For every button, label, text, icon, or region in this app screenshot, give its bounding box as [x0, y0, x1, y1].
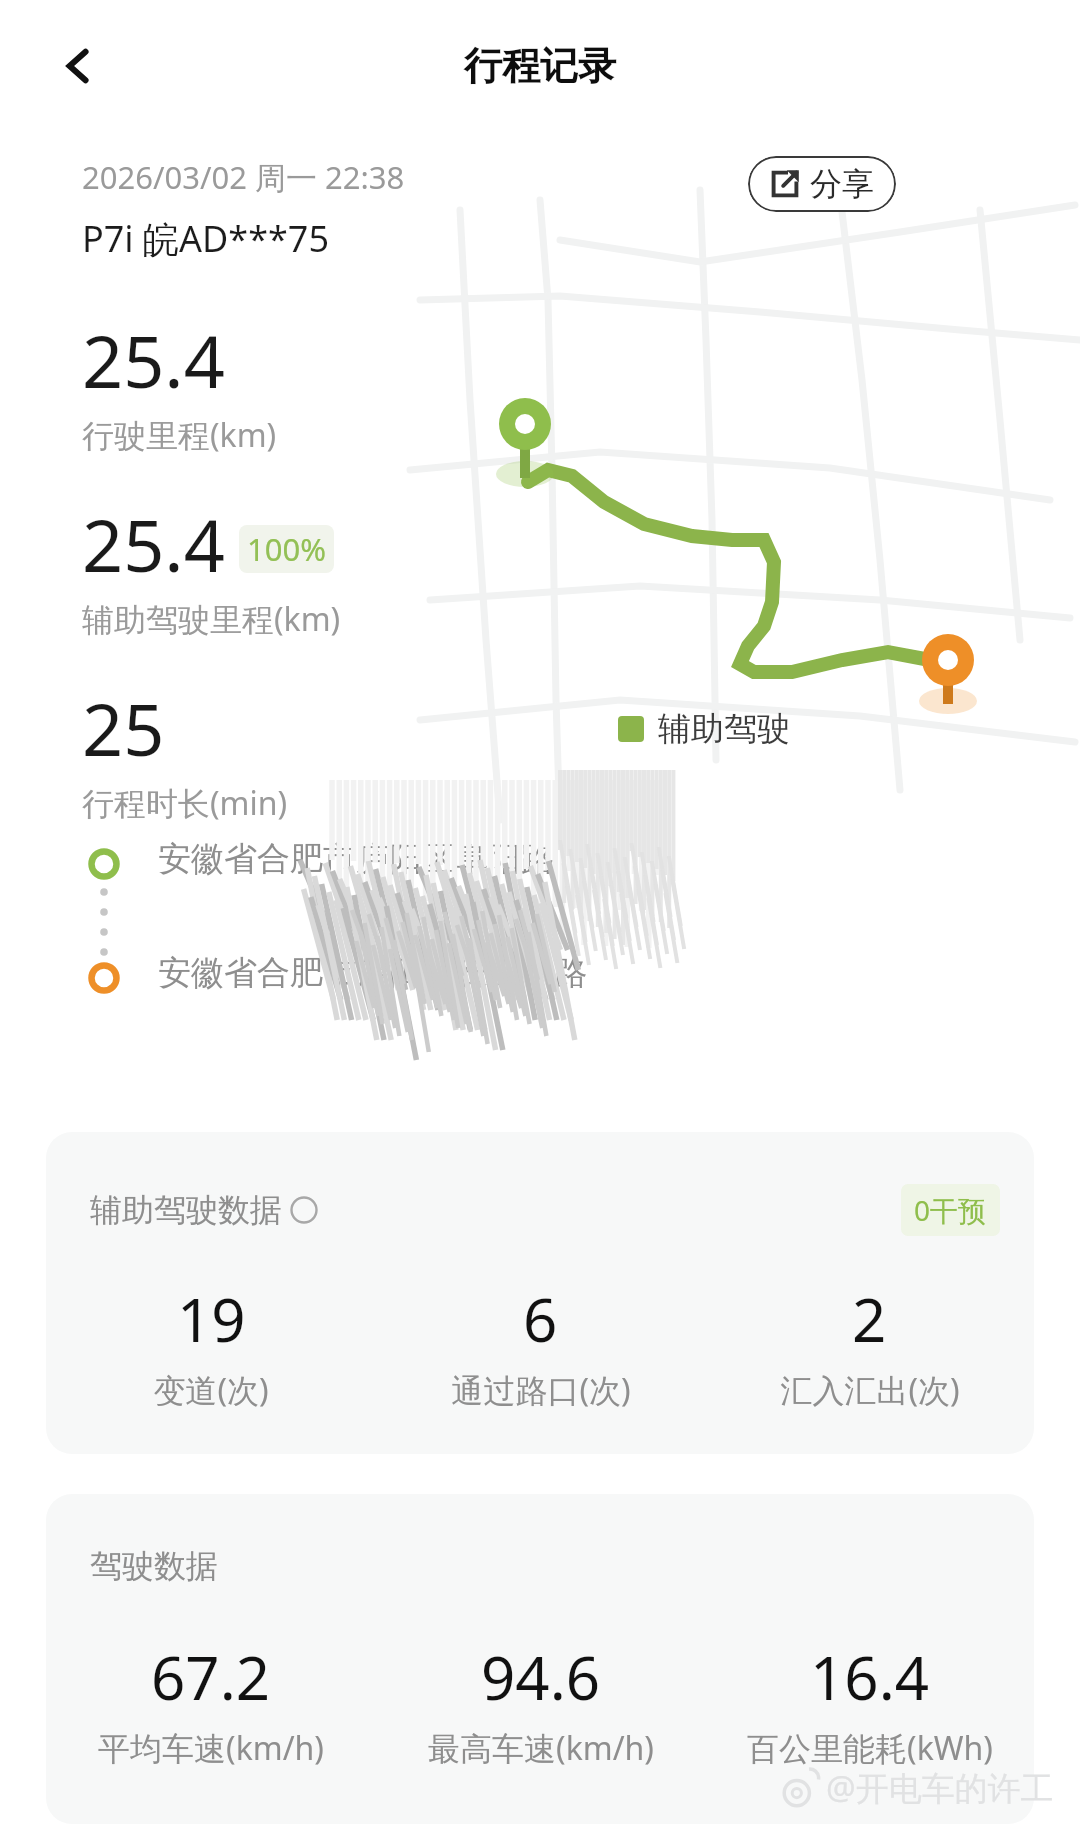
staticText: 19	[177, 1278, 246, 1360]
staticText: 25.4	[82, 495, 225, 593]
staticText: 百公里能耗(kWh)	[747, 1726, 993, 1770]
staticText: 变道(次)	[153, 1368, 269, 1412]
staticText: 辅助驾驶数据	[90, 1190, 282, 1230]
staticText: 分享	[810, 164, 874, 204]
button[interactable]: 2	[705, 1278, 1034, 1412]
staticText: 安徽省合肥市庐阳区长江中路	[158, 952, 587, 994]
staticText: 辅助驾驶	[658, 708, 790, 750]
staticText: 平均车速(km/h)	[98, 1726, 324, 1770]
staticText: 行驶里程(km)	[82, 413, 277, 457]
staticText: 行程时长(min)	[82, 781, 288, 825]
staticText: 0干预	[914, 1191, 987, 1229]
button[interactable]: 16.4	[705, 1636, 1034, 1770]
staticText: 驾驶数据	[90, 1546, 218, 1586]
staticText: 最高车速(km/h)	[428, 1726, 654, 1770]
button[interactable]: 分享	[748, 156, 896, 212]
staticText: P7i 皖AD***75	[82, 214, 329, 263]
staticText: 67.2	[151, 1636, 271, 1718]
staticText: 16.4	[810, 1636, 930, 1718]
staticText: 汇入汇出(次)	[780, 1368, 960, 1412]
staticText: 6	[523, 1278, 558, 1360]
button[interactable]: Help	[290, 1196, 318, 1224]
staticText: 100%	[247, 528, 326, 570]
staticText: 辅助驾驶里程(km)	[82, 597, 341, 641]
button[interactable]: 19	[46, 1278, 376, 1412]
button[interactable]: Back	[38, 26, 118, 106]
staticText: 通过路口(次)	[451, 1368, 631, 1412]
staticText: 安徽省合肥市庐阳区阜阳路	[158, 838, 554, 880]
staticText: 行程记录	[464, 42, 616, 90]
staticText: @开电车的许工	[826, 1765, 1054, 1810]
staticText: 2	[852, 1278, 887, 1360]
staticText: 94.6	[481, 1636, 601, 1718]
button[interactable]: 辅助驾驶	[618, 708, 790, 750]
staticText: 25	[82, 679, 165, 777]
staticText: 25.4	[82, 311, 225, 409]
button[interactable]: 67.2	[46, 1636, 376, 1770]
button[interactable]: 6	[376, 1278, 705, 1412]
button[interactable]: 94.6	[376, 1636, 705, 1770]
staticText: 2026/03/02 周一 22:38	[82, 156, 405, 198]
